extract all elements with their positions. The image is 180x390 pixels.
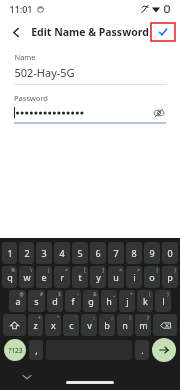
- staticText: o: [149, 271, 155, 283]
- staticText: %: [11, 267, 15, 273]
- staticText: z: [33, 319, 38, 331]
- button[interactable]: 0: [162, 242, 178, 264]
- staticText: 502-Hay-5G: [14, 65, 75, 80]
- staticText: @: [19, 291, 24, 297]
- staticText: ': [75, 315, 77, 321]
- staticText: +: [130, 291, 133, 297]
- button[interactable]: Enter: [152, 338, 176, 362]
- staticText: [: [84, 267, 86, 273]
- staticText: v: [87, 319, 92, 331]
- button[interactable]: t: [72, 266, 88, 288]
- button[interactable]: r: [54, 266, 70, 288]
- button[interactable]: c: [63, 314, 79, 336]
- staticText: q: [7, 271, 13, 283]
- staticText: 3: [41, 247, 47, 259]
- button[interactable]: o: [144, 266, 160, 288]
- button[interactable]: Hide keyboard: [20, 370, 34, 384]
- staticText: _: [113, 291, 115, 297]
- staticText: t: [78, 271, 82, 283]
- button[interactable]: .: [135, 340, 149, 360]
- button[interactable]: w: [19, 266, 34, 288]
- button[interactable]: 9: [144, 242, 160, 264]
- staticText: 5: [77, 247, 83, 259]
- staticText: c: [69, 319, 74, 331]
- staticText: (: [149, 291, 151, 297]
- staticText: ,: [35, 344, 38, 356]
- staticText: s: [34, 295, 39, 307]
- button[interactable]: Shift: [3, 314, 26, 336]
- staticText: &: [93, 291, 97, 297]
- button[interactable]: 8: [126, 242, 142, 264]
- staticText: =: [65, 267, 68, 273]
- button[interactable]: 2: [19, 242, 34, 264]
- button[interactable]: Backspace: [153, 314, 177, 336]
- staticText: w: [23, 271, 31, 283]
- staticText: d: [52, 295, 58, 307]
- button[interactable]: u: [108, 266, 124, 288]
- staticText: u: [113, 271, 119, 283]
- button[interactable]: Back: [4, 20, 28, 44]
- button[interactable]: m: [135, 314, 151, 336]
- button[interactable]: ?123: [4, 339, 26, 361]
- button[interactable]: Save: [155, 24, 171, 40]
- button[interactable]: q: [2, 266, 17, 288]
- staticText: Name: [14, 52, 36, 62]
- button[interactable]: d: [47, 290, 63, 312]
- staticText: 2: [24, 247, 30, 259]
- staticText: *: [38, 315, 41, 321]
- button[interactable]: g: [83, 290, 99, 312]
- staticText: x: [51, 319, 56, 331]
- button[interactable]: h: [101, 290, 117, 312]
- staticText: b: [104, 319, 110, 331]
- button[interactable]: p: [162, 266, 178, 288]
- staticText: k: [143, 295, 148, 307]
- staticText: 11:01: [9, 3, 33, 15]
- button[interactable]: a: [9, 290, 26, 312]
- staticText: {: [156, 267, 158, 273]
- button[interactable]: 5: [72, 242, 88, 264]
- button[interactable]: x: [45, 314, 61, 336]
- button[interactable]: 7: [108, 242, 124, 264]
- staticText: -: [77, 291, 79, 297]
- button[interactable]: e: [36, 266, 52, 288]
- button[interactable]: k: [137, 290, 153, 312]
- staticText: e: [41, 271, 47, 283]
- staticText: ;: [111, 315, 113, 321]
- staticText: 0: [167, 247, 173, 259]
- button[interactable]: i: [126, 266, 142, 288]
- button[interactable]: l: [155, 290, 171, 312]
- button[interactable]: 1: [2, 242, 17, 264]
- button[interactable]: ,: [29, 340, 43, 360]
- staticText: ]: [102, 267, 104, 273]
- button[interactable]: j: [119, 290, 135, 312]
- button[interactable]: v: [81, 314, 97, 336]
- staticText: |: [47, 267, 50, 273]
- button[interactable]: y: [90, 266, 106, 288]
- button[interactable]: Show password: [152, 106, 166, 119]
- button[interactable]: z: [28, 314, 43, 336]
- staticText: 9: [149, 247, 155, 259]
- staticText: ?123: [8, 346, 23, 355]
- staticText: y: [96, 271, 101, 283]
- staticText: >: [137, 267, 140, 273]
- staticText: l: [162, 295, 165, 307]
- staticText: .: [141, 344, 144, 356]
- button[interactable]: n: [117, 314, 133, 336]
- staticText: :: [93, 315, 95, 321]
- staticText: n: [122, 319, 128, 331]
- button[interactable]: s: [28, 290, 45, 312]
- button[interactable]: 6: [90, 242, 106, 264]
- staticText: g: [88, 295, 94, 307]
- button[interactable]: Password: [14, 93, 166, 124]
- button[interactable]: Name: [14, 52, 166, 85]
- staticText: Edit Name & Password: [31, 25, 149, 39]
- button[interactable]: f: [65, 290, 81, 312]
- staticText: f: [71, 295, 75, 307]
- button[interactable]: 4: [54, 242, 70, 264]
- button[interactable]: b: [99, 314, 115, 336]
- button[interactable]: 3: [36, 242, 52, 264]
- staticText: 1: [7, 247, 13, 259]
- staticText: 6: [95, 247, 101, 259]
- staticText: 7: [113, 247, 119, 259]
